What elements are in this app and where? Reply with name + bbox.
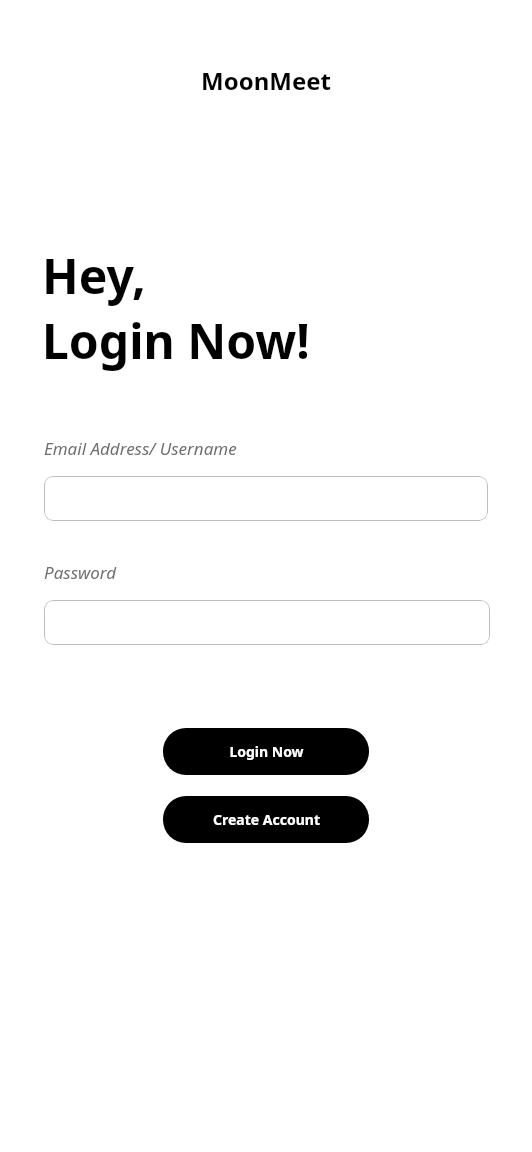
staticText: Email Address/ Username	[44, 437, 237, 460]
button[interactable]: Create Account	[163, 796, 369, 843]
button[interactable]	[44, 600, 490, 645]
staticText: Password	[44, 561, 117, 584]
staticText: Login Now!	[42, 308, 310, 373]
button[interactable]	[44, 476, 488, 521]
staticText: Create Account	[213, 810, 320, 829]
staticText: Login Now	[229, 742, 304, 761]
staticText: Hey,	[42, 243, 146, 308]
staticText: MoonMeet	[201, 64, 331, 97]
button[interactable]: Login Now	[163, 728, 369, 775]
